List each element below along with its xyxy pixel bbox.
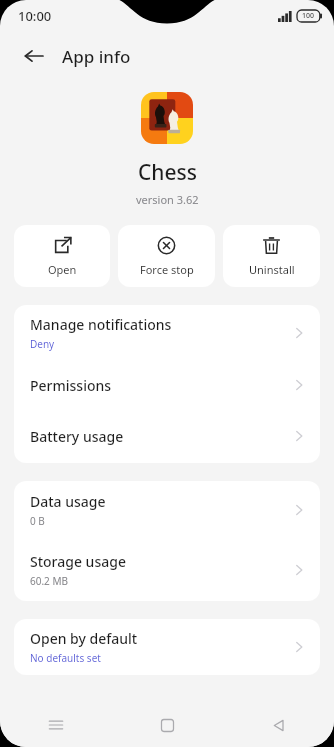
button[interactable]: Open by default [14, 619, 320, 675]
button[interactable]: Manage notifications [14, 305, 320, 361]
staticText: Storage usage [30, 552, 126, 571]
staticText: version 3.62 [136, 192, 199, 207]
button[interactable]: Home [112, 703, 223, 747]
staticText: 0 B [30, 514, 45, 528]
button[interactable]: Uninstall [223, 225, 320, 287]
button[interactable]: Back [223, 703, 334, 747]
staticText: Battery usage [30, 427, 124, 446]
staticText: Deny [30, 337, 55, 351]
button[interactable]: Back [14, 36, 54, 76]
button[interactable]: Open [14, 225, 110, 287]
staticText: Open by default [30, 629, 138, 648]
staticText: Permissions [30, 376, 112, 395]
staticText: 10:00 [18, 7, 52, 25]
staticText: App info [62, 45, 131, 68]
button[interactable]: Permissions [14, 361, 320, 409]
staticText: Manage notifications [30, 315, 172, 334]
staticText: Force stop [140, 262, 194, 277]
staticText: Data usage [30, 492, 106, 511]
staticText: Open [48, 262, 77, 277]
button[interactable]: Recent apps [0, 703, 112, 747]
button[interactable]: Data usage [14, 481, 320, 539]
staticText: Uninstall [249, 262, 295, 277]
staticText: 60.2 MB [30, 574, 69, 588]
staticText: Chess [138, 158, 197, 187]
button[interactable]: Force stop [118, 225, 215, 287]
button[interactable]: Battery usage [14, 409, 320, 463]
button[interactable]: Storage usage [14, 539, 320, 601]
staticText: No defaults set [30, 651, 101, 665]
staticText: 100 [302, 11, 315, 21]
